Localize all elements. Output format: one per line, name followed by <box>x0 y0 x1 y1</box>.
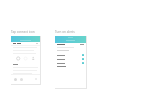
button[interactable] <box>13 43 38 44</box>
button[interactable] <box>57 44 84 45</box>
button[interactable]: Tap connect icon <box>11 30 35 34</box>
staticText: Tap connect icon <box>11 30 35 34</box>
button[interactable] <box>57 57 84 61</box>
button[interactable]: Messages <box>20 78 23 81</box>
button[interactable] <box>55 36 86 43</box>
staticText: Turn on alerts <box>55 30 75 34</box>
button[interactable] <box>57 61 84 65</box>
button[interactable]: Turn on alerts <box>55 30 75 34</box>
button[interactable] <box>11 36 40 42</box>
button[interactable]: Home <box>14 78 17 81</box>
button[interactable] <box>57 53 84 57</box>
